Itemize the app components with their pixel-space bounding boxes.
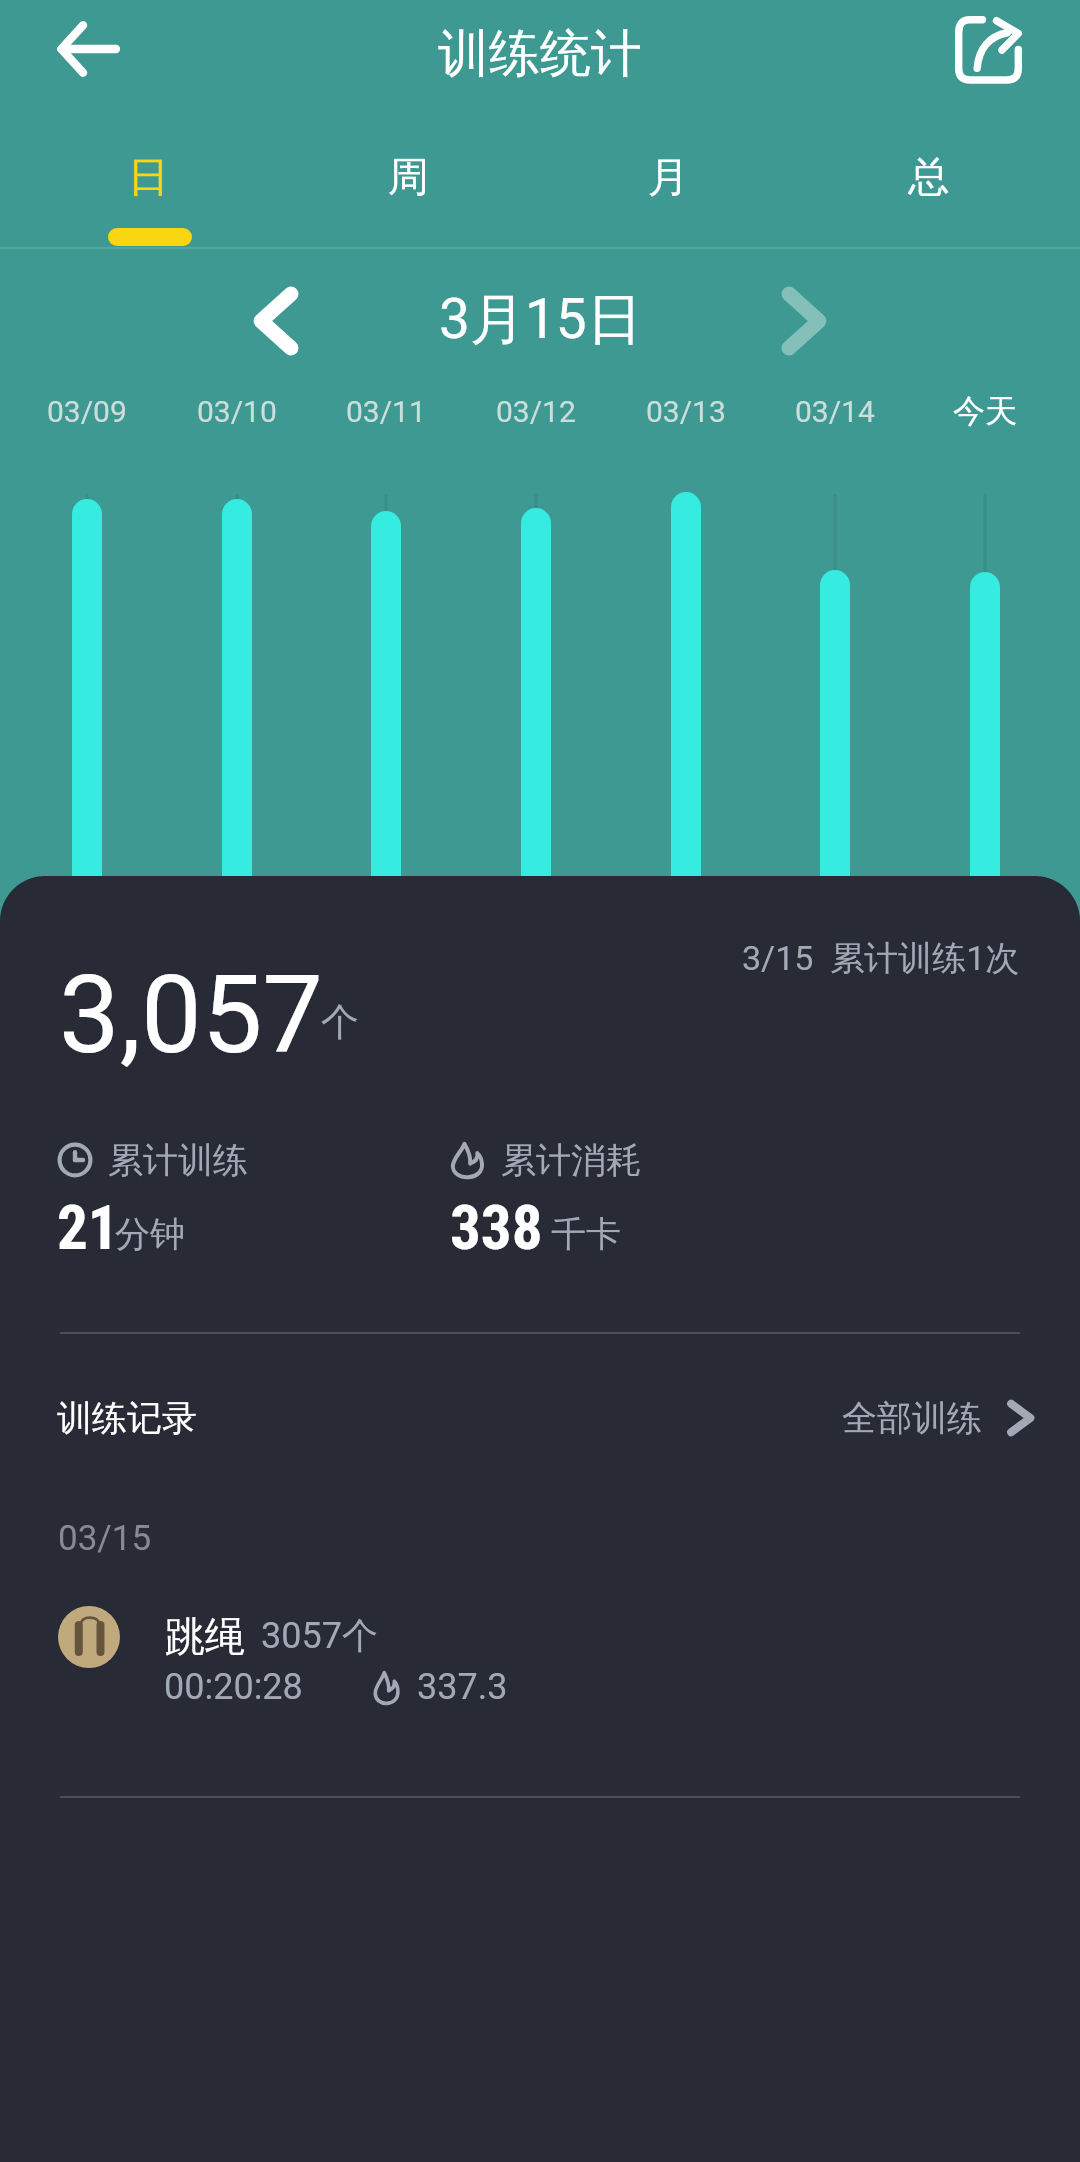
staticText: 338 bbox=[450, 1192, 543, 1263]
staticText: 03/13 bbox=[646, 394, 726, 429]
staticText: 训练统计 bbox=[438, 22, 642, 86]
staticText: 千卡 bbox=[551, 1212, 621, 1256]
staticText: 分钟 bbox=[115, 1212, 185, 1256]
staticText: 03/14 bbox=[795, 394, 875, 429]
button[interactable]: 训练记录 bbox=[0, 1372, 1080, 1464]
staticText: 日 bbox=[128, 152, 169, 204]
staticText: 3,057 bbox=[59, 952, 324, 1079]
staticText: 3月15日 bbox=[439, 285, 642, 354]
staticText: 03/15 bbox=[58, 1518, 152, 1559]
button[interactable]: 月 bbox=[580, 110, 756, 250]
button[interactable]: 日 bbox=[60, 110, 236, 250]
staticText: 累计消耗 bbox=[501, 1138, 641, 1182]
button[interactable]: 周 bbox=[320, 110, 496, 250]
staticText: 跳绳 bbox=[165, 1611, 245, 1661]
staticText: 3057个 bbox=[261, 1613, 378, 1658]
staticText: 训练记录 bbox=[57, 1396, 197, 1440]
staticText: 3/15 累计训练1次 bbox=[742, 937, 1020, 980]
button[interactable]: Back bbox=[42, 6, 134, 92]
button[interactable]: 跳绳 bbox=[0, 1576, 1080, 1716]
button[interactable]: Previous day bbox=[233, 278, 319, 364]
button[interactable]: 总 bbox=[840, 110, 1016, 250]
staticText: 全部训练 bbox=[842, 1396, 982, 1440]
button[interactable]: Next day bbox=[761, 278, 847, 364]
staticText: 个 bbox=[321, 998, 359, 1046]
staticText: 总 bbox=[908, 152, 949, 204]
staticText: 337.3 bbox=[417, 1666, 508, 1708]
staticText: 月 bbox=[648, 152, 689, 204]
staticText: 00:20:28 bbox=[164, 1666, 303, 1708]
staticText: 累计训练 bbox=[108, 1138, 248, 1182]
staticText: 今天 bbox=[953, 391, 1017, 431]
button[interactable]: Share bbox=[943, 4, 1033, 94]
staticText: 03/09 bbox=[47, 394, 127, 429]
staticText: 03/12 bbox=[496, 394, 576, 429]
staticText: 周 bbox=[388, 152, 429, 204]
staticText: 03/10 bbox=[197, 394, 277, 429]
staticText: 21 bbox=[57, 1192, 119, 1263]
staticText: 03/11 bbox=[346, 394, 426, 429]
